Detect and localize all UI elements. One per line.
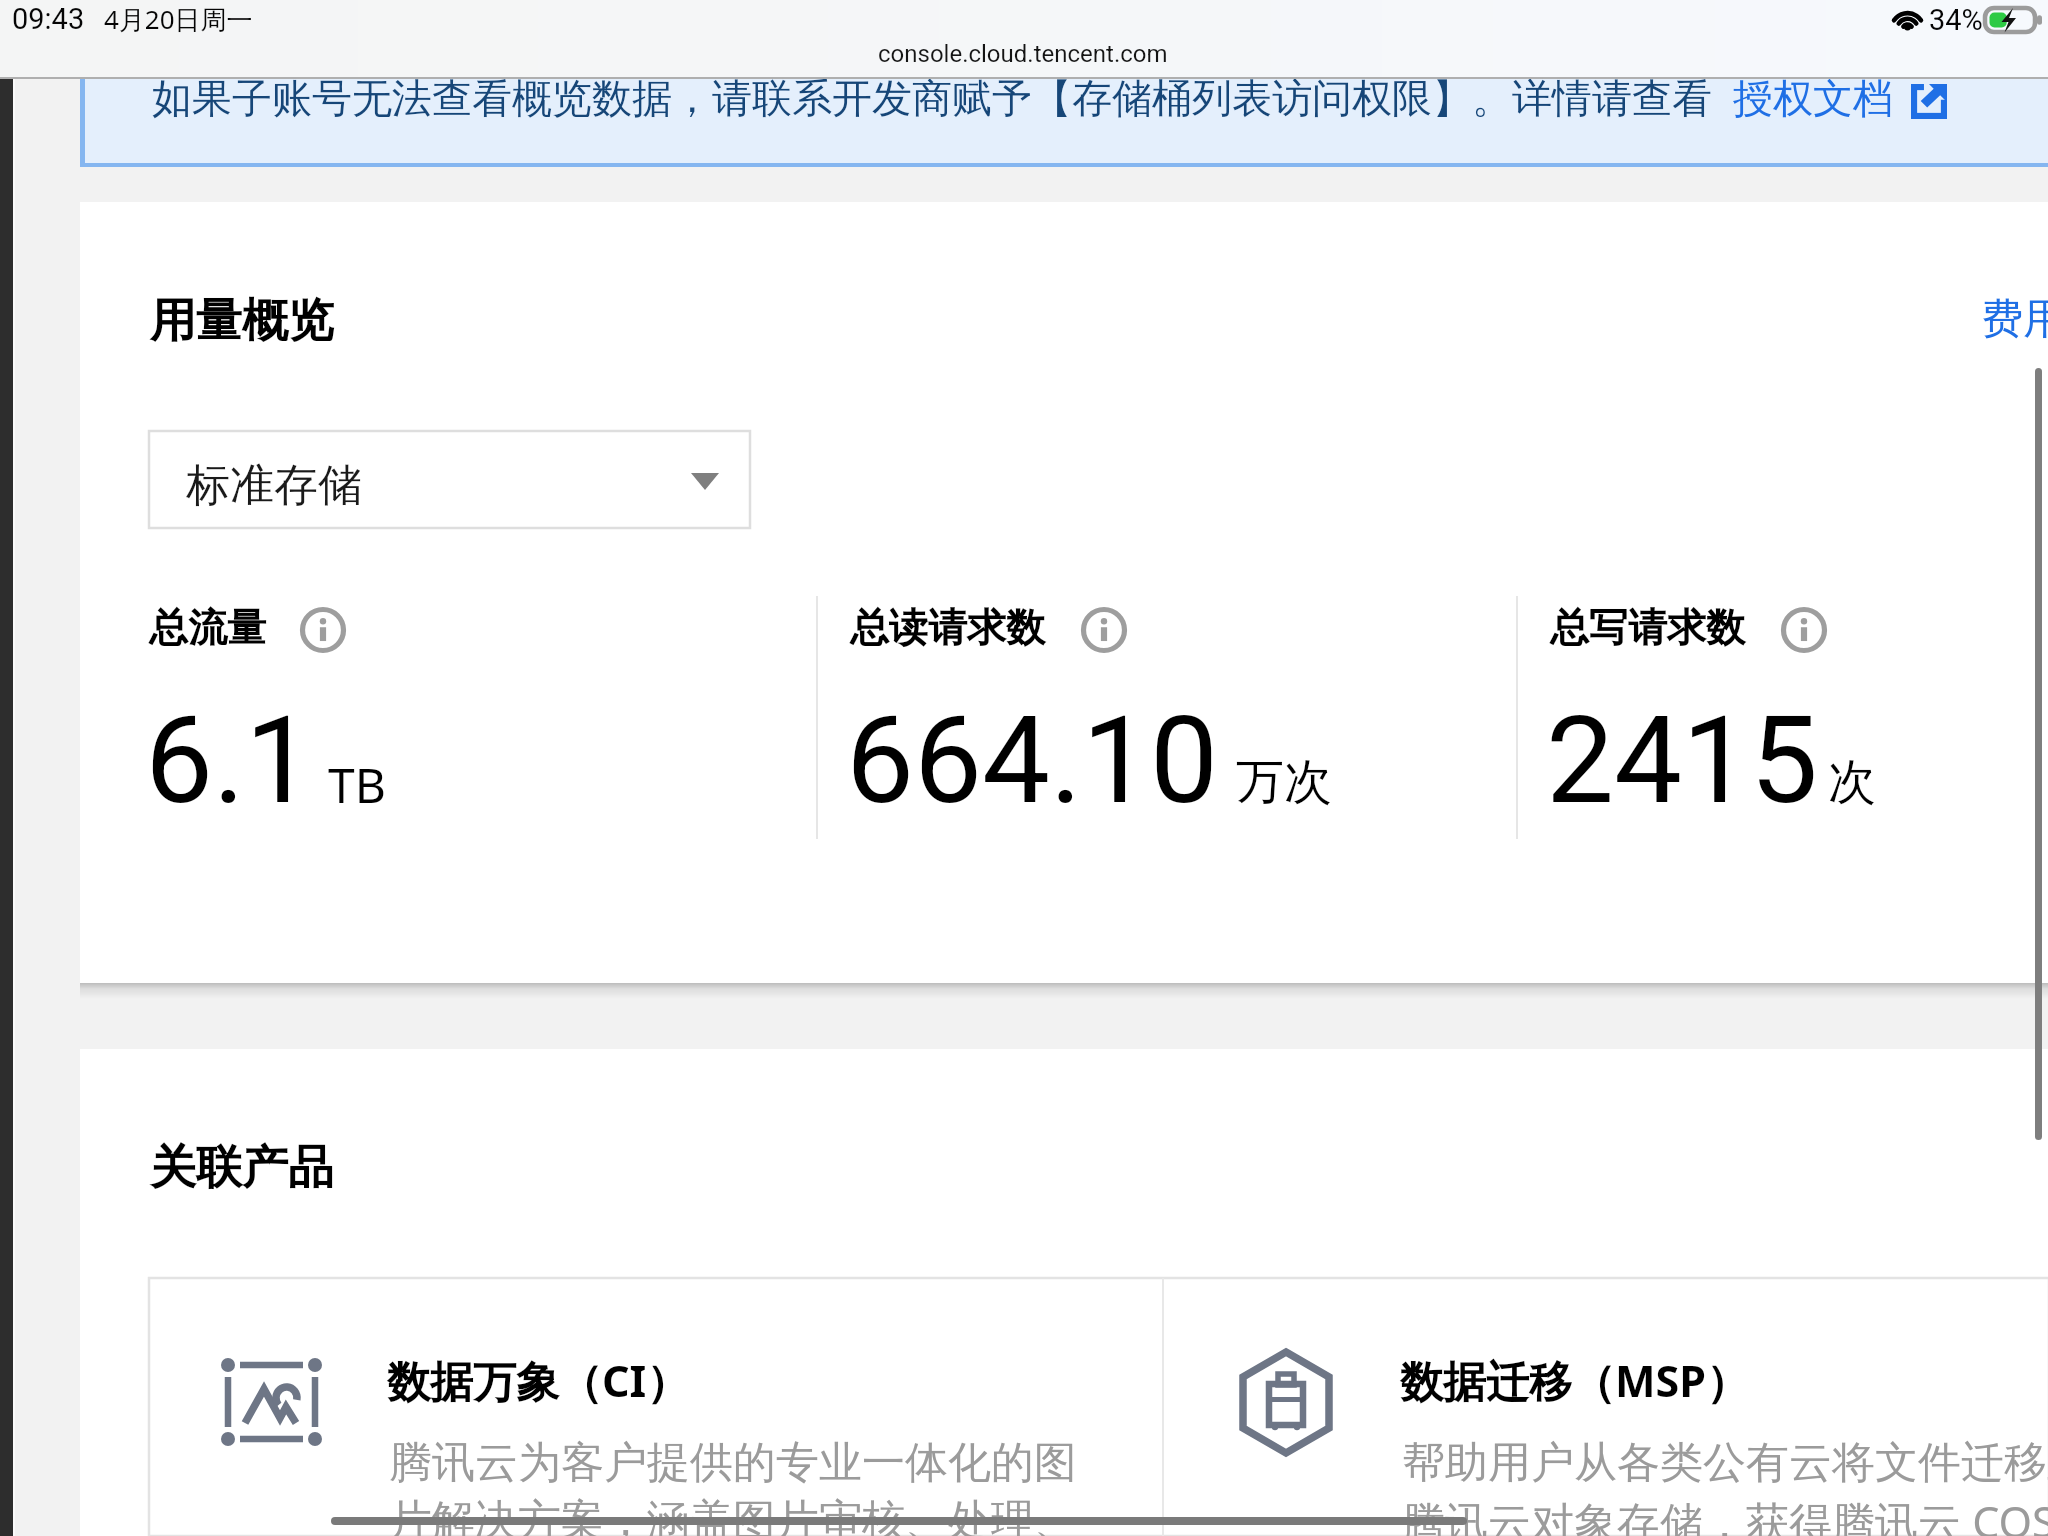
staticText: TB — [328, 752, 386, 817]
staticText: 总流量 — [149, 603, 266, 652]
button[interactable]: 数据迁移（MSP） — [1164, 1278, 2048, 1536]
button[interactable]: 总读请求数 说明 — [1081, 607, 1127, 653]
staticText: 总读请求数 — [850, 603, 1045, 652]
staticText: 腾讯云为客户提供的专业一体化的图 片解决方案，涵盖图片审核、处理、 — [389, 1434, 1077, 1536]
staticText: console.cloud.tencent.com — [878, 40, 1168, 68]
button[interactable]: 总写请求数 说明 — [1781, 607, 1827, 653]
staticText: 数据迁移（MSP） — [1400, 1351, 1749, 1410]
staticText: 664.10 — [846, 690, 1218, 832]
button[interactable]: 数据万象（CI） — [149, 1278, 1162, 1536]
staticText: 4月20日周一 — [104, 1, 253, 37]
staticText: 用量概览 — [150, 292, 334, 350]
staticText: 6.1 — [145, 690, 313, 832]
staticText: 09:43 — [12, 2, 85, 36]
staticText: 34% — [1929, 3, 1983, 37]
button[interactable]: 费用中心 — [1981, 293, 2048, 346]
button[interactable]: 标准存储 — [149, 431, 750, 528]
staticText: 标准存储 — [186, 458, 362, 513]
button[interactable]: 授权文档 — [1733, 73, 1893, 123]
staticText: 2415 — [1546, 690, 1819, 832]
staticText: 万次 — [1236, 752, 1332, 812]
staticText: 帮助用户从各类公有云将文件迁移至 腾讯云对象存储，获得腾讯云 COS — [1402, 1434, 2048, 1536]
button[interactable] — [80, 79, 2048, 167]
staticText: 数据万象（CI） — [387, 1351, 690, 1410]
staticText: 如果子账号无法查看概览数据，请联系开发商赋予【存储桶列表访问权限】。详情请查看 — [152, 73, 1712, 123]
button[interactable]: 打开授权文档 — [1911, 84, 1947, 119]
staticText: 总写请求数 — [1550, 603, 1745, 652]
staticText: 次 — [1828, 752, 1876, 812]
button[interactable]: 总流量 说明 — [300, 607, 346, 653]
staticText: 关联产品 — [150, 1139, 334, 1197]
